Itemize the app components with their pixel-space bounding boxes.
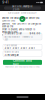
staticText: Name on card (4, 51, 18, 53)
staticText: Payments are encrypted end to end. (5, 66, 40, 68)
staticText: Card number (4, 44, 17, 47)
staticText: Alex Morgan (4, 53, 18, 56)
staticText: Standard plan (4, 32, 21, 35)
staticText: Billed monthly · renews 12 Jun (4, 36, 32, 41)
staticText: payment. Your card will be charged as so… (2, 22, 41, 28)
button[interactable]: Name on card (3, 51, 42, 56)
button[interactable]: Card number (3, 44, 42, 50)
staticText: Review the details below before you conf… (2, 17, 39, 22)
staticText: secure.example.com (12, 5, 33, 11)
staticText: $48.00 (30, 32, 41, 35)
staticText: 9:41 (2, 1, 8, 4)
staticText: Confirm and pay (13, 59, 32, 66)
staticText: SECURE CHECKOUT (8, 11, 37, 15)
button[interactable]: Confirm and pay (3, 60, 42, 65)
button[interactable]: Address bar (4, 6, 41, 10)
staticText: 4242 4242 4242 4242 (4, 47, 35, 50)
staticText: order is placed, and a receipt is emaile… (2, 28, 35, 33)
staticText: right away. (2, 34, 14, 36)
